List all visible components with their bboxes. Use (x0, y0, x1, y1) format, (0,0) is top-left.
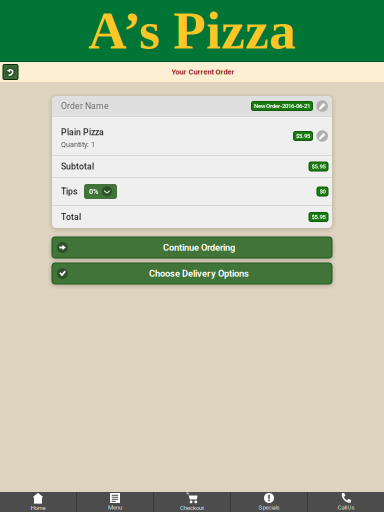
button[interactable]: Back (3, 64, 18, 79)
button[interactable]: Choose Delivery Options (52, 263, 332, 284)
button[interactable]: 0% (84, 184, 117, 199)
staticText: Checkout (180, 504, 204, 511)
staticText: Tips (61, 186, 77, 197)
staticText: Choose Delivery Options (149, 268, 249, 279)
staticText: New Order-2016-06-21 (254, 102, 310, 109)
staticText: Call Us (337, 504, 354, 511)
staticText: Home (30, 504, 45, 511)
staticText: $5.95 (296, 132, 310, 139)
button[interactable]: Specials (231, 492, 307, 512)
staticText: Menu (108, 504, 122, 511)
button[interactable]: Menu (77, 492, 153, 512)
button[interactable]: Call Us (308, 492, 384, 512)
staticText: Your Current Order (171, 68, 234, 76)
staticText: Specials (258, 504, 279, 511)
staticText: $5.95 (311, 163, 325, 170)
staticText: Plain Pizza (61, 127, 104, 137)
staticText: $5.95 (311, 213, 325, 220)
staticText: 0% (89, 187, 98, 196)
button[interactable]: Edit (316, 100, 328, 112)
staticText: Subtotal (61, 161, 94, 172)
staticText: Continue Ordering (163, 242, 235, 253)
staticText: $0 (319, 188, 325, 195)
staticText: Total (61, 212, 81, 222)
button[interactable]: Home (0, 492, 76, 512)
button[interactable]: Checkout (154, 492, 230, 512)
staticText: A’s Pizza (88, 1, 296, 60)
button[interactable]: Continue Ordering (52, 237, 332, 258)
button[interactable]: Edit (316, 130, 328, 142)
staticText: Quantity: 1 (61, 140, 95, 149)
staticText: Order Name (61, 101, 109, 111)
